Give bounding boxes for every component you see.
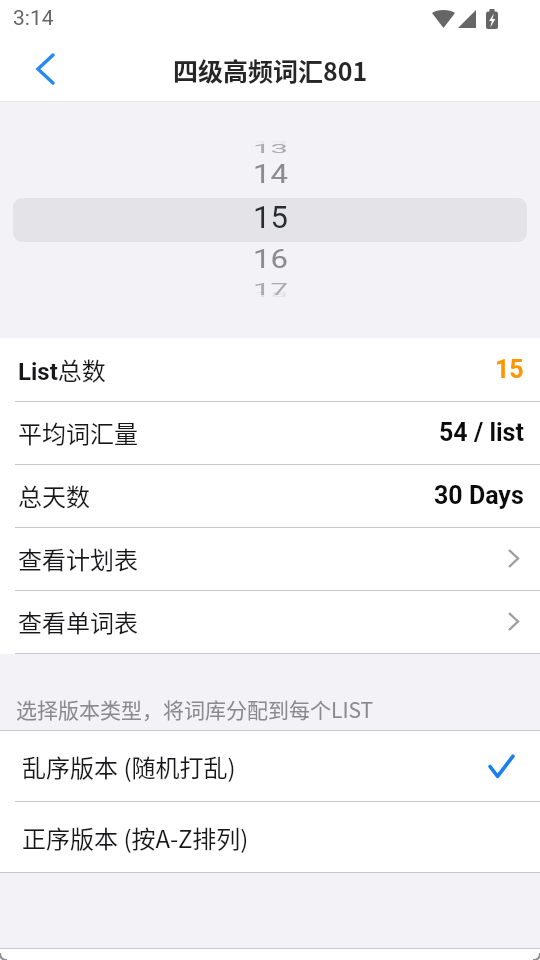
staticText: 查看单词表 xyxy=(18,604,138,639)
staticText: List总数 xyxy=(18,352,106,387)
button[interactable]: Back xyxy=(17,41,73,97)
staticText: 四级高频词汇801 xyxy=(173,52,368,88)
staticText: 54 / list xyxy=(439,418,524,447)
staticText: 16 xyxy=(253,244,288,274)
staticText: 15 xyxy=(253,199,288,235)
staticText: 14 xyxy=(253,159,288,189)
staticText: 15 xyxy=(495,355,524,384)
button[interactable]: 平均词汇量 xyxy=(0,401,540,464)
button[interactable]: 正序版本 (按A-Z排列) xyxy=(0,802,540,872)
staticText: 查看计划表 xyxy=(18,541,138,576)
staticText: 30 Days xyxy=(434,481,524,510)
staticText: 18 xyxy=(253,289,288,299)
button[interactable]: 查看单词表 xyxy=(0,590,540,653)
staticText: 13 xyxy=(253,140,288,156)
staticText: 乱序版本 (随机打乱) xyxy=(22,749,236,784)
staticText: 12 xyxy=(253,138,288,148)
button[interactable]: 乱序版本 (随机打乱) xyxy=(0,731,540,801)
button[interactable]: 查看计划表 xyxy=(0,527,540,590)
button[interactable]: 总天数 xyxy=(0,464,540,527)
staticText: 17 xyxy=(253,280,288,298)
staticText: 正序版本 (按A-Z排列) xyxy=(22,820,249,855)
staticText: 3:14 xyxy=(13,6,54,31)
staticText: 总天数 xyxy=(18,478,90,513)
staticText: 平均词汇量 xyxy=(18,415,138,450)
staticText: 选择版本类型，将词库分配到每个LIST xyxy=(16,694,374,724)
button[interactable]: List总数 xyxy=(0,338,540,401)
